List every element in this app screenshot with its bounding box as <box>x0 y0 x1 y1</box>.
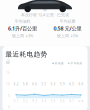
staticText: 0.58 元/公里 <box>53 25 81 32</box>
staticText: 9.7 <box>69 99 74 103</box>
staticText: 平均油耗 <box>14 19 30 24</box>
staticText: 6.0 <box>78 83 83 86</box>
staticText: 较上周 ↓3% <box>12 33 33 38</box>
staticText: 9.2 <box>23 99 28 103</box>
staticText: 0 <box>8 106 10 109</box>
staticText: 6.6 <box>32 83 37 86</box>
staticText: 较上周 ↓5% <box>57 33 78 38</box>
staticText: 最近耗电趋势 <box>5 50 47 58</box>
staticText: 20 <box>6 59 10 63</box>
staticText: 6.5 <box>69 83 74 86</box>
staticText: 15 <box>6 71 10 74</box>
staticText: 5.5 <box>41 83 46 86</box>
staticText: 9.6 <box>60 99 65 103</box>
staticText: 6.2 <box>14 83 19 86</box>
staticText: 9.4 <box>41 99 46 103</box>
staticText: 6.3 <box>51 83 56 86</box>
staticText: 本次行程 12.4 公里 · 已完成 <box>21 12 69 17</box>
staticText: 5 <box>8 94 10 98</box>
staticText: 9.1 <box>14 99 19 103</box>
staticText: 5.9 <box>60 83 65 86</box>
staticText: 5.8 <box>23 83 28 86</box>
staticText: 9.5 <box>51 99 56 103</box>
staticText: 10 <box>6 83 10 86</box>
staticText: 平均花费 <box>59 19 75 24</box>
staticText: 9.3 <box>32 99 37 103</box>
staticText: 6.1升/百公里 <box>8 25 37 32</box>
staticText: 耗电量 <box>55 62 64 65</box>
staticText: kWh <box>5 62 10 65</box>
staticText: 今天 <box>78 99 84 103</box>
staticText: 平均电耗 <box>70 62 82 65</box>
